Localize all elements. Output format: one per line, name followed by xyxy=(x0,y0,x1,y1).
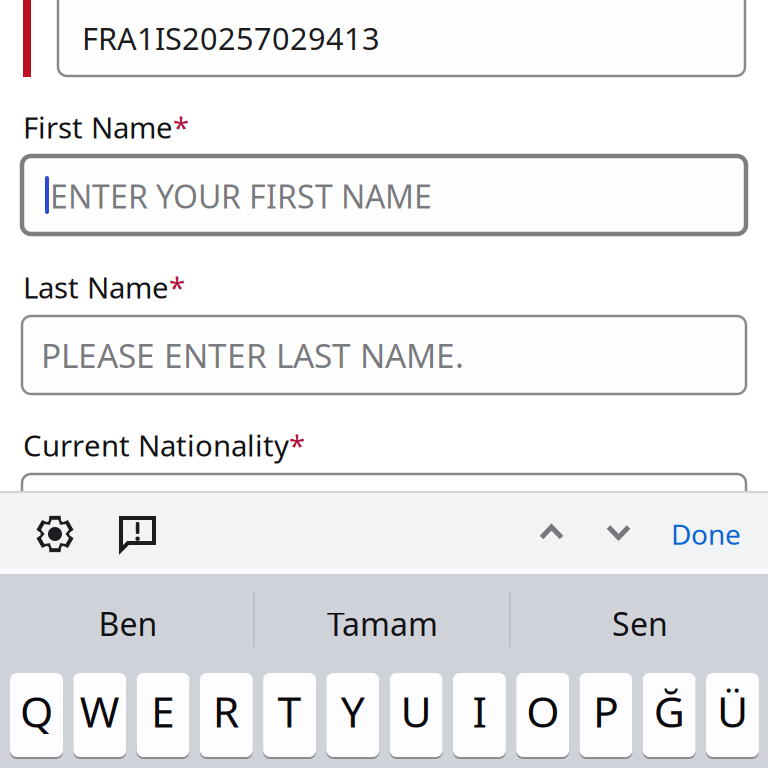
staticText: Y xyxy=(341,683,365,739)
staticText: E xyxy=(151,683,175,739)
button[interactable]: Next field xyxy=(606,524,631,541)
staticText: R xyxy=(213,683,240,739)
staticText: Sen xyxy=(612,602,668,645)
staticText: FRA1IS20257029413 xyxy=(82,18,380,58)
staticText: Tamam xyxy=(327,602,438,645)
button[interactable]: I xyxy=(453,672,506,758)
button[interactable]: E xyxy=(136,672,189,758)
button[interactable]: Done xyxy=(608,510,768,558)
staticText: PLEASE ENTER LAST NAME. xyxy=(41,333,464,377)
staticText: * xyxy=(169,267,185,306)
staticText: * xyxy=(173,107,189,146)
staticText: U xyxy=(401,683,432,739)
staticText: Q xyxy=(20,683,53,739)
button[interactable]: Ğ xyxy=(643,672,696,758)
button[interactable]: Tamam xyxy=(256,575,509,672)
button[interactable]: Settings xyxy=(34,513,76,555)
staticText: Current Nationality xyxy=(23,425,289,464)
staticText: W xyxy=(80,683,120,739)
button[interactable]: W xyxy=(73,672,126,758)
button[interactable]: Y xyxy=(326,672,379,758)
staticText: I xyxy=(472,683,486,739)
button[interactable]: Ü xyxy=(706,672,759,758)
button[interactable]: T xyxy=(263,672,316,758)
staticText: ENTER YOUR FIRST NAME xyxy=(50,175,432,217)
staticText: O xyxy=(526,683,559,739)
staticText: Last Name xyxy=(23,267,169,306)
button[interactable]: Ben xyxy=(0,575,256,672)
staticText: T xyxy=(278,683,302,739)
button[interactable]: U xyxy=(390,672,443,758)
staticText: Ü xyxy=(717,683,748,739)
staticText: First Name xyxy=(23,107,173,146)
button[interactable]: Previous field xyxy=(539,524,564,541)
staticText: Done xyxy=(671,515,741,553)
button[interactable]: O xyxy=(516,672,569,758)
staticText: Ğ xyxy=(654,683,685,739)
button[interactable]: Report a problem xyxy=(119,516,156,553)
button[interactable]: Sen xyxy=(512,575,768,672)
button[interactable]: P xyxy=(579,672,632,758)
staticText: P xyxy=(593,683,619,739)
staticText: * xyxy=(289,425,305,464)
button[interactable]: Q xyxy=(10,672,63,758)
button[interactable]: R xyxy=(200,672,253,758)
staticText: Ben xyxy=(98,602,157,645)
